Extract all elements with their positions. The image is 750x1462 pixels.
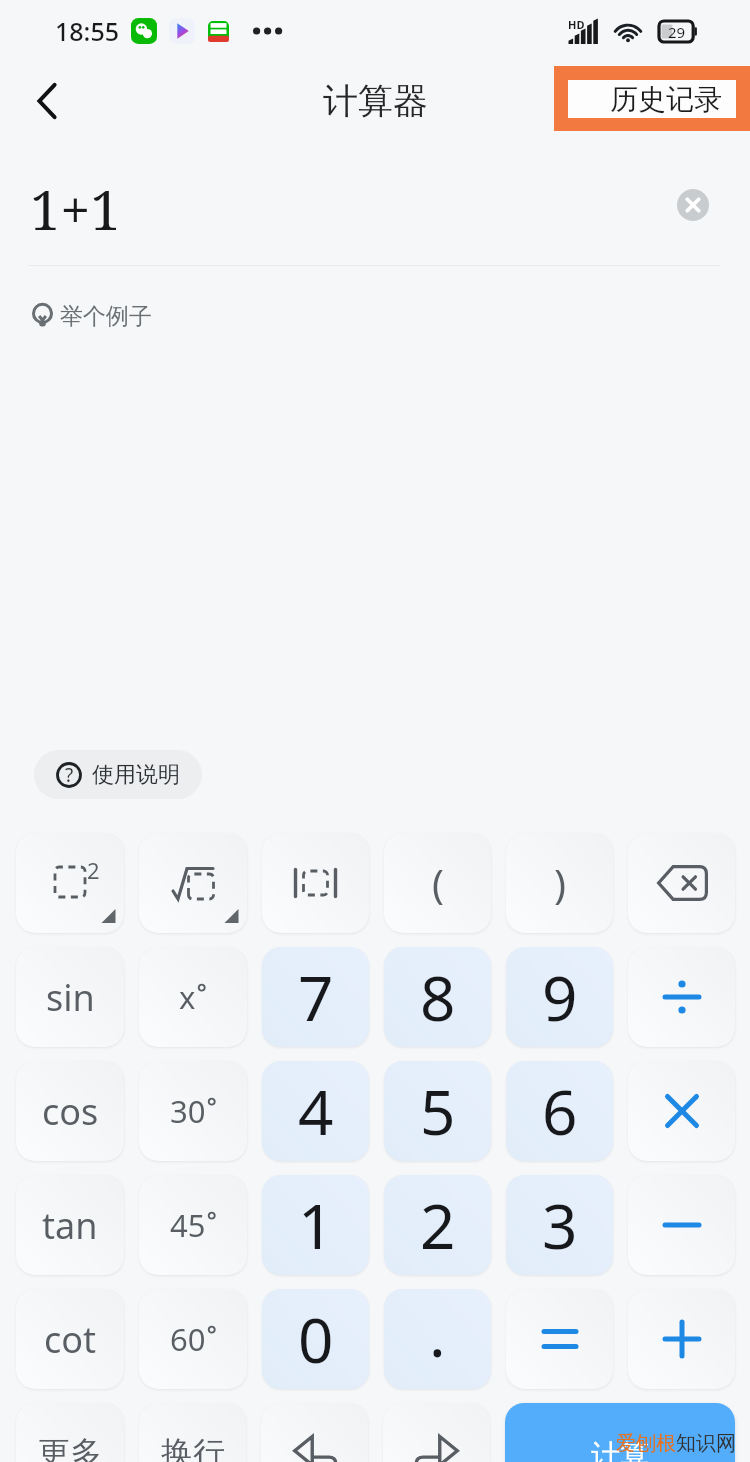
button[interactable]: Redo: [383, 1403, 490, 1462]
staticText: 计算器: [323, 79, 428, 123]
button[interactable]: ?: [34, 750, 202, 799]
button[interactable]: 7: [262, 947, 369, 1047]
staticText: 举个例子: [60, 302, 152, 331]
button[interactable]: Minus: [628, 1175, 735, 1275]
button[interactable]: 4: [262, 1061, 369, 1161]
staticText: 换行: [161, 1433, 225, 1462]
staticText: ?: [65, 762, 74, 788]
button[interactable]: 45 degrees: [139, 1175, 247, 1275]
button[interactable]: 5: [384, 1061, 491, 1161]
staticText: 1: [298, 1183, 334, 1267]
button[interactable]: cot: [16, 1289, 124, 1389]
button[interactable]: 换行: [139, 1403, 246, 1462]
button[interactable]: absolute value: [262, 833, 369, 933]
staticText: 60: [170, 1318, 206, 1360]
staticText: 9: [542, 955, 578, 1039]
button[interactable]: 30 degrees: [139, 1061, 247, 1161]
staticText: 30: [170, 1090, 206, 1132]
staticText: 历史记录: [610, 82, 722, 117]
staticText: 更多: [38, 1433, 102, 1462]
button[interactable]: Clear: [673, 185, 713, 225]
button[interactable]: Divide: [628, 947, 735, 1047]
button[interactable]: 更多: [16, 1403, 124, 1462]
staticText: cot: [44, 1315, 97, 1364]
button[interactable]: Plus: [628, 1289, 735, 1389]
button[interactable]: x degrees: [139, 947, 247, 1047]
button[interactable]: 举个例子: [32, 298, 152, 334]
button[interactable]: square root: [139, 833, 247, 933]
button[interactable]: .: [384, 1289, 491, 1389]
staticText: 爱刨根: [616, 1431, 676, 1456]
staticText: (: [432, 856, 444, 910]
button[interactable]: Back: [21, 75, 73, 127]
button[interactable]: 3: [506, 1175, 613, 1275]
staticText: 4: [298, 1069, 334, 1153]
button[interactable]: sin: [16, 947, 124, 1047]
button[interactable]: 1: [262, 1175, 369, 1275]
button[interactable]: tan: [16, 1175, 124, 1275]
button[interactable]: cos: [16, 1061, 124, 1161]
button[interactable]: 计算: [505, 1403, 735, 1462]
staticText: cos: [42, 1087, 99, 1136]
staticText: 29: [668, 22, 686, 42]
staticText: 1+1: [30, 172, 121, 246]
staticText: 知识网: [676, 1431, 736, 1456]
staticText: 18:55: [55, 14, 120, 48]
staticText: ): [554, 856, 566, 910]
staticText: 计算: [591, 1437, 649, 1462]
staticText: 45: [170, 1204, 206, 1246]
button[interactable]: Undo: [261, 1403, 368, 1462]
staticText: 0: [298, 1297, 334, 1381]
staticText: HD: [568, 17, 585, 32]
button[interactable]: Backspace: [628, 833, 735, 933]
button[interactable]: 6: [506, 1061, 613, 1161]
staticText: 2: [420, 1183, 456, 1267]
button[interactable]: (: [384, 833, 491, 933]
button[interactable]: 0: [262, 1289, 369, 1389]
button[interactable]: 历史记录: [568, 80, 736, 118]
button[interactable]: 2: [384, 1175, 491, 1275]
staticText: 使用说明: [92, 761, 180, 789]
staticText: tan: [42, 1201, 98, 1250]
staticText: 5: [420, 1069, 456, 1153]
button[interactable]: square: [16, 833, 124, 933]
staticText: 6: [542, 1069, 578, 1153]
staticText: .: [429, 1291, 446, 1375]
staticText: x: [179, 976, 196, 1018]
button[interactable]: 9: [506, 947, 613, 1047]
staticText: sin: [46, 973, 95, 1022]
button[interactable]: 60 degrees: [139, 1289, 247, 1389]
button[interactable]: Multiply: [628, 1061, 735, 1161]
staticText: 8: [420, 955, 456, 1039]
button[interactable]: ): [506, 833, 613, 933]
button[interactable]: Equals: [506, 1289, 613, 1389]
staticText: 2: [87, 855, 100, 885]
staticText: 7: [298, 955, 334, 1039]
button[interactable]: 8: [384, 947, 491, 1047]
staticText: 3: [542, 1183, 578, 1267]
